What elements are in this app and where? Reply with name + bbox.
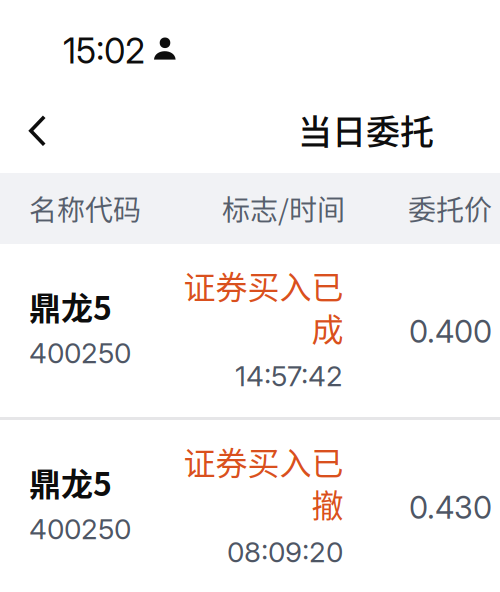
- staticText: 0.430: [409, 489, 492, 526]
- staticText: 15:02: [63, 30, 145, 72]
- staticText: 鼎龙5: [29, 459, 112, 505]
- button[interactable]: Back: [0, 90, 63, 173]
- staticText: 标志/时间: [222, 188, 345, 228]
- button[interactable]: 鼎龙5: [0, 420, 500, 592]
- staticText: 14:57:42: [235, 359, 343, 393]
- staticText: 400250: [29, 512, 131, 546]
- staticText: 委托价: [408, 188, 492, 228]
- staticText: 0.400: [409, 313, 492, 350]
- staticText: 证券买入已成: [183, 262, 343, 351]
- staticText: 当日委托: [298, 105, 434, 154]
- staticText: 08:09:20: [227, 535, 343, 569]
- staticText: 名称代码: [29, 188, 141, 228]
- button[interactable]: 鼎龙5: [0, 244, 500, 417]
- staticText: 证券买入已撤: [183, 438, 343, 527]
- staticText: 400250: [29, 336, 131, 370]
- staticText: 鼎龙5: [29, 283, 112, 329]
